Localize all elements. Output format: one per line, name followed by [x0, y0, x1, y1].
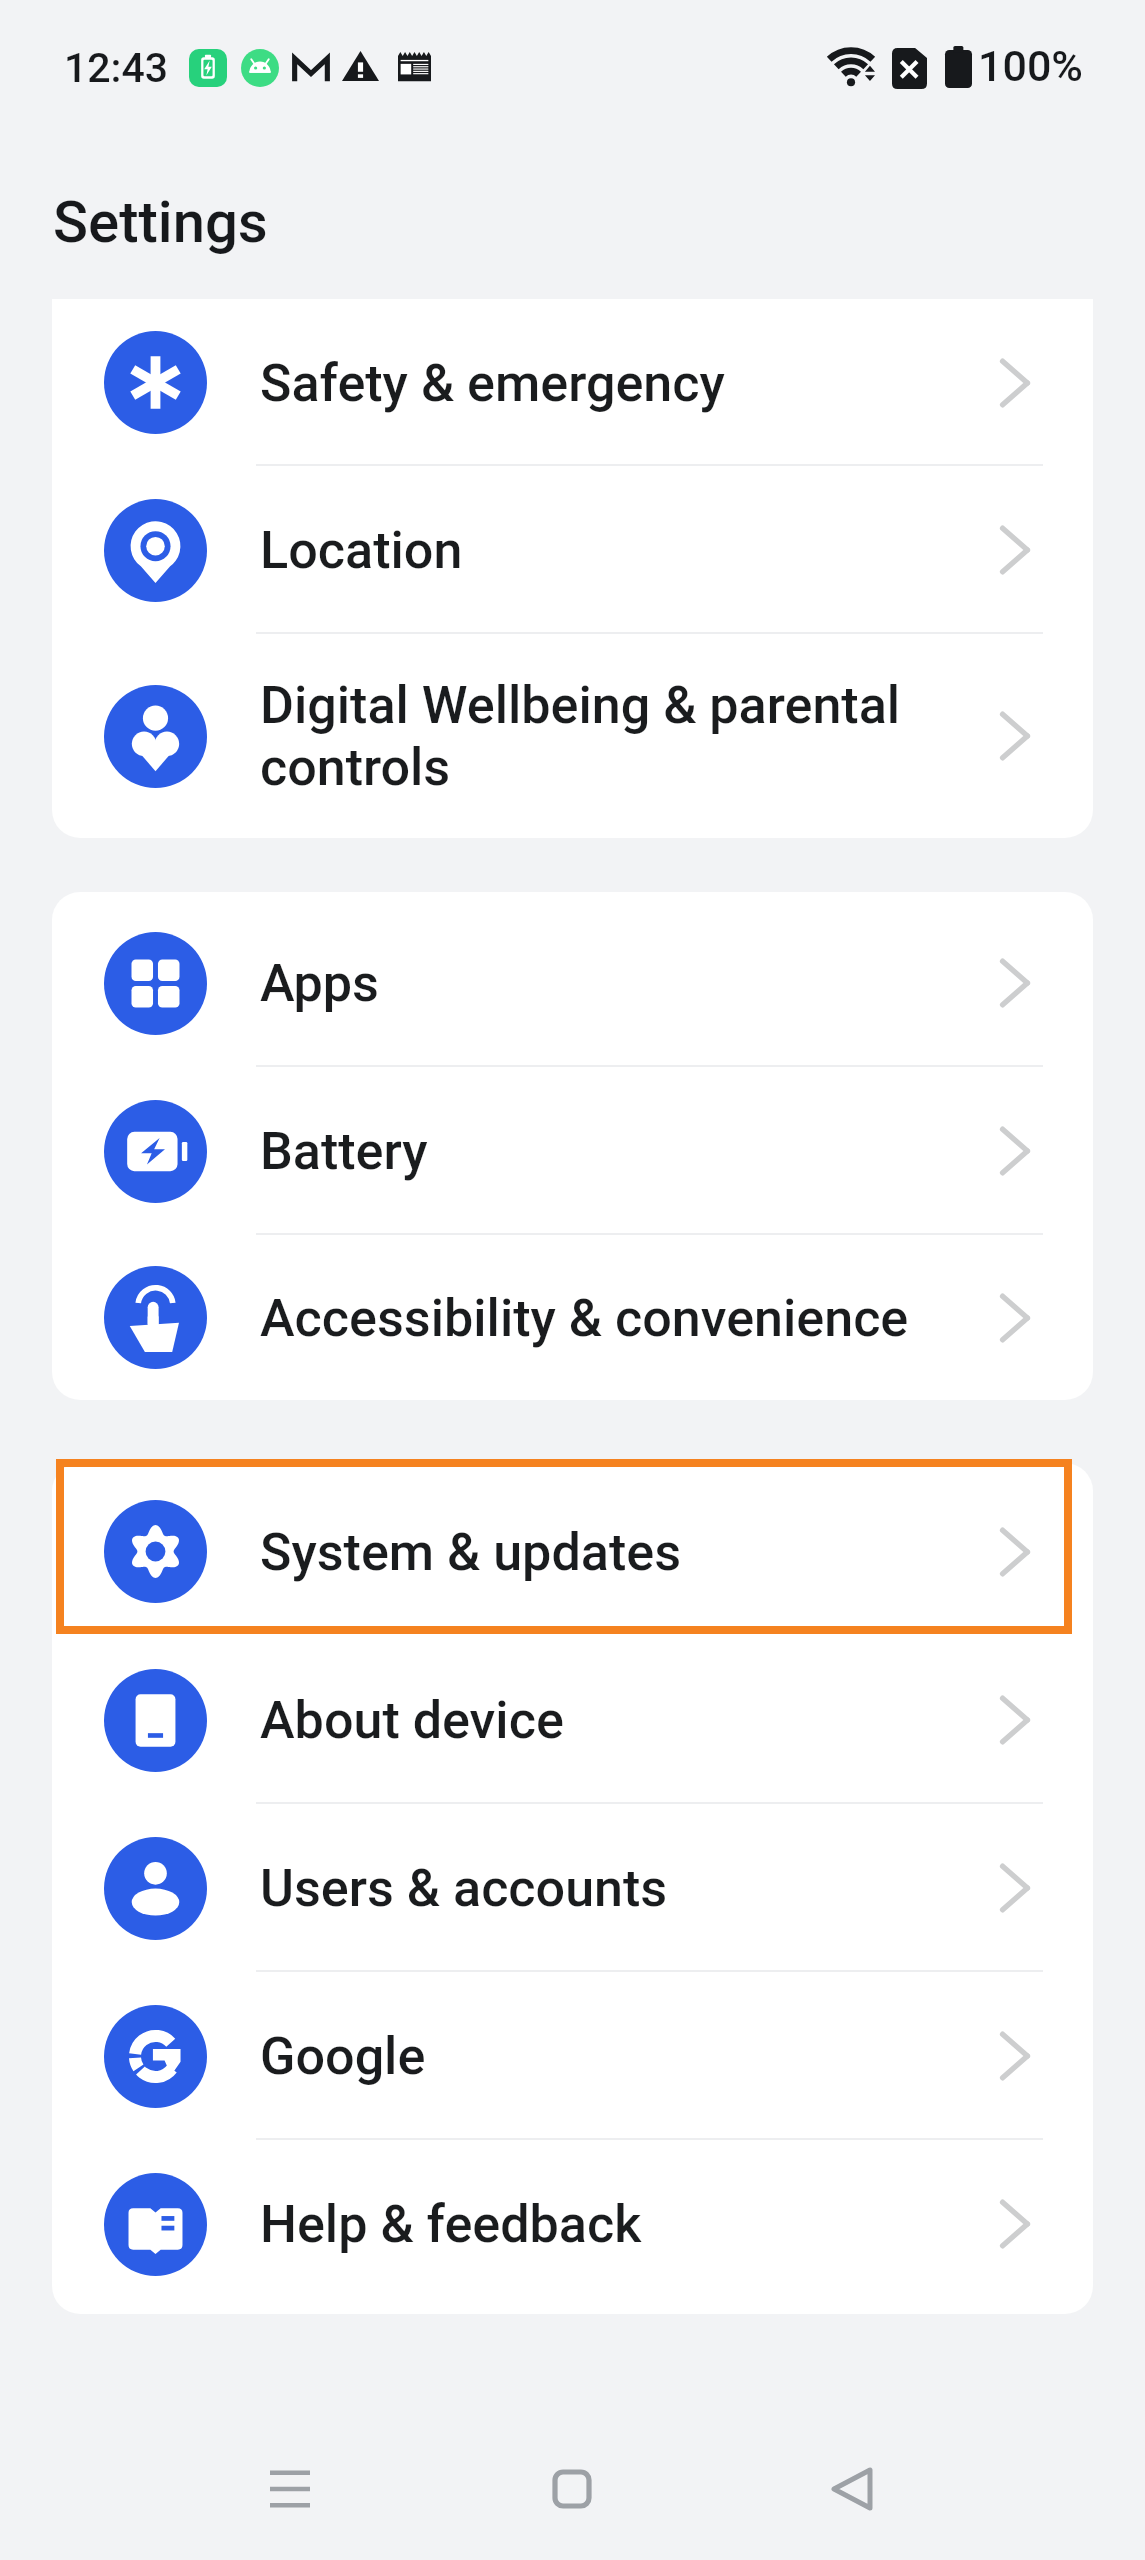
- staticText: Settings: [53, 188, 268, 256]
- button[interactable]: Location: [52, 466, 1093, 634]
- staticText: Users & accounts: [260, 1857, 915, 1919]
- staticText: Google: [260, 2025, 915, 2087]
- button[interactable]: Users & accounts: [52, 1804, 1093, 1972]
- button[interactable]: Apps: [52, 899, 1093, 1067]
- staticText: Accessibility & convenience: [260, 1287, 915, 1349]
- staticText: Help & feedback: [260, 2193, 915, 2255]
- staticText: Battery: [260, 1120, 915, 1182]
- button[interactable]: System & updates: [52, 1467, 1093, 1636]
- staticText: 100%: [978, 41, 1083, 91]
- staticText: System & updates: [260, 1521, 915, 1583]
- button[interactable]: Accessibility & convenience: [52, 1235, 1093, 1400]
- staticText: Digital Wellbeing & parental controls: [260, 674, 915, 798]
- staticText: Location: [260, 519, 915, 581]
- button[interactable]: Back: [756, 2429, 948, 2549]
- button[interactable]: Digital Wellbeing & parental controls: [52, 634, 1093, 838]
- button[interactable]: Safety & emergency: [52, 299, 1093, 466]
- staticText: Safety & emergency: [260, 352, 915, 414]
- button[interactable]: Help & feedback: [52, 2140, 1093, 2308]
- button[interactable]: Home: [476, 2429, 668, 2549]
- staticText: About device: [260, 1689, 915, 1751]
- button[interactable]: Battery: [52, 1067, 1093, 1235]
- button[interactable]: Google: [52, 1972, 1093, 2140]
- button[interactable]: Recent apps: [194, 2429, 386, 2549]
- staticText: 12:43: [64, 44, 169, 92]
- staticText: Apps: [260, 952, 915, 1014]
- button[interactable]: About device: [52, 1636, 1093, 1804]
